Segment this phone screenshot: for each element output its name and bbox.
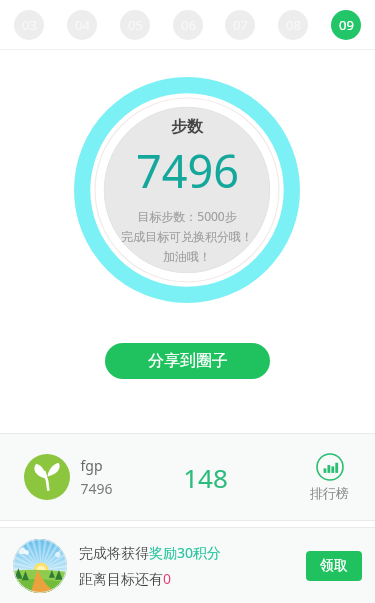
button[interactable]: 07: [225, 10, 255, 40]
staticText: 领取: [320, 557, 348, 575]
button[interactable]: 05: [120, 10, 150, 40]
staticText: 06: [181, 16, 196, 34]
staticText: 完成将获得奖励30积分: [79, 543, 222, 562]
staticText: 03: [22, 16, 37, 34]
button[interactable]: 排行榜: [310, 453, 349, 501]
staticText: 08: [286, 16, 301, 34]
button[interactable]: 03: [14, 10, 44, 40]
staticText: 步数: [171, 117, 203, 137]
staticText: 04: [75, 16, 90, 34]
staticText: 05: [128, 16, 143, 34]
staticText: 07: [233, 16, 248, 34]
button[interactable]: fgp: [0, 434, 375, 520]
button[interactable]: 06: [173, 10, 203, 40]
button[interactable]: 完成将获得奖励30积分: [0, 528, 375, 603]
staticText: 148: [183, 460, 228, 495]
staticText: 目标步数：5000步: [137, 208, 237, 224]
button[interactable]: 09: [331, 10, 361, 40]
staticText: 加油哦！: [163, 249, 211, 264]
button[interactable]: 领取: [306, 551, 362, 581]
staticText: 排行榜: [310, 485, 349, 501]
staticText: fgp: [80, 456, 103, 475]
staticText: 距离目标还有0: [79, 569, 172, 588]
staticText: 分享到圈子: [148, 351, 228, 371]
staticText: 完成目标可兑换积分哦！: [121, 229, 253, 244]
button[interactable]: 08: [278, 10, 308, 40]
staticText: 7496: [136, 140, 239, 201]
button[interactable]: 分享到圈子: [105, 343, 270, 379]
button[interactable]: 04: [67, 10, 97, 40]
staticText: 7496: [80, 479, 113, 498]
staticText: 09: [339, 16, 354, 34]
